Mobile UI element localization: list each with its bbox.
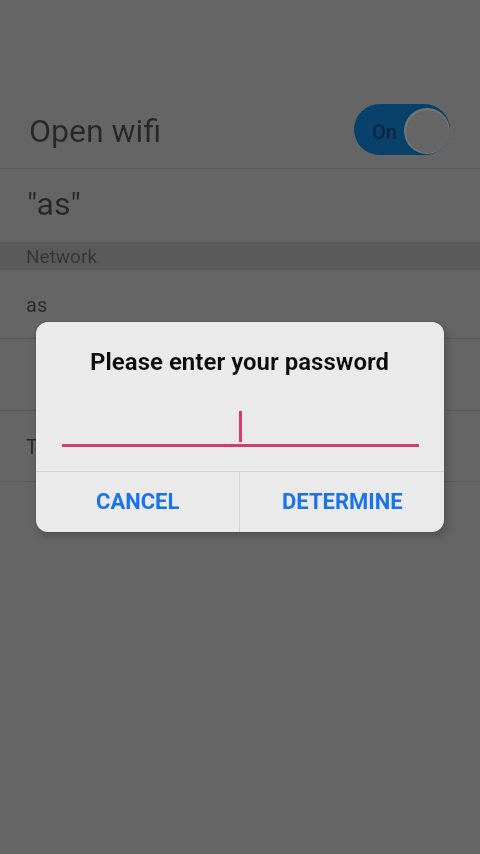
staticText: "as": [27, 185, 81, 223]
staticText: TP-LINK_2.4G: [26, 435, 150, 458]
staticText: DETERMINE: [282, 489, 403, 515]
button[interactable]: TP-LINK_2.4G: [0, 411, 480, 482]
staticText: Please enter your password: [90, 348, 390, 376]
staticText: CANCEL: [96, 489, 180, 515]
button[interactable]: Wi-Fi on: [354, 104, 450, 155]
staticText: Network: [26, 245, 98, 267]
staticText: as: [26, 293, 48, 316]
button[interactable]: "as": [0, 169, 480, 242]
button[interactable]: Open wifi: [0, 104, 480, 168]
button[interactable]: [0, 339, 480, 411]
button[interactable]: DETERMINE: [240, 472, 444, 532]
button[interactable]: CANCEL: [36, 472, 239, 532]
staticText: Open wifi: [29, 112, 162, 150]
button[interactable]: as: [0, 270, 480, 339]
staticText: On: [372, 120, 397, 143]
